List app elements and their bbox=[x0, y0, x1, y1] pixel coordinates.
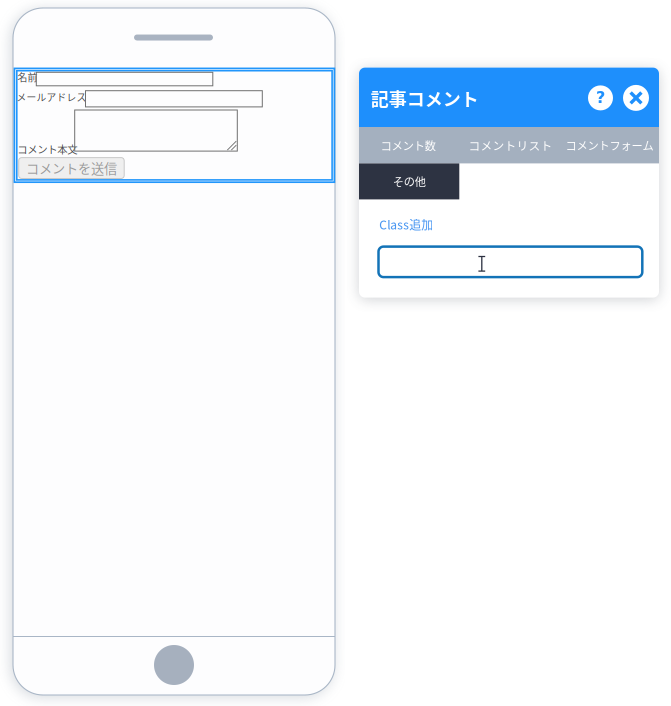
button[interactable]: コメントリスト bbox=[461, 127, 559, 163]
staticText: メールアドレス bbox=[17, 90, 87, 104]
button[interactable]: コメントフォーム bbox=[560, 127, 658, 163]
staticText: Class追加 bbox=[379, 216, 433, 233]
staticText: コメントフォーム bbox=[565, 137, 653, 153]
button[interactable]: 閉じる bbox=[623, 85, 649, 111]
staticText: コメント本文 bbox=[17, 141, 77, 156]
button[interactable]: コメント数 bbox=[363, 127, 452, 163]
staticText: コメントを送信 bbox=[26, 158, 117, 178]
staticText: コメントリスト bbox=[468, 137, 552, 154]
button[interactable]: ヘルプ bbox=[588, 85, 613, 110]
button[interactable]: その他 bbox=[359, 163, 459, 199]
staticText: その他 bbox=[393, 173, 426, 189]
staticText: ? bbox=[596, 88, 605, 107]
button[interactable]: Class追加 bbox=[379, 216, 433, 233]
button[interactable]: コメントを送信 bbox=[19, 158, 124, 178]
staticText: 記事コメント bbox=[371, 85, 479, 111]
staticText: 名前 bbox=[18, 70, 38, 84]
staticText: コメント数 bbox=[380, 137, 435, 153]
